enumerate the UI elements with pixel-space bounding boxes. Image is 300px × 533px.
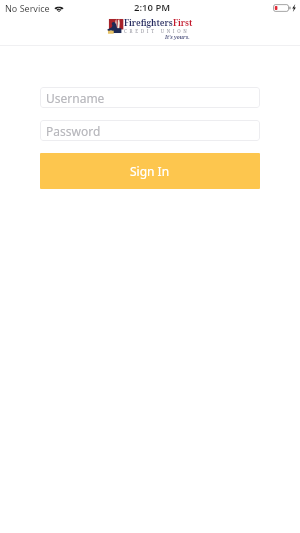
staticText: No Service xyxy=(5,2,50,14)
staticText: Sign In xyxy=(130,163,170,179)
staticText: Firefighters xyxy=(124,17,173,28)
staticText: 2:10 PM xyxy=(134,1,171,14)
button[interactable]: Password xyxy=(40,120,260,141)
staticText: Username xyxy=(46,90,105,106)
button[interactable]: Username xyxy=(40,87,260,108)
staticText: Password xyxy=(46,123,101,139)
staticText: CREDIT UNION xyxy=(124,28,190,34)
staticText: First xyxy=(173,17,193,28)
staticText: It's yours. xyxy=(165,34,190,41)
button[interactable]: Sign In xyxy=(40,153,260,189)
